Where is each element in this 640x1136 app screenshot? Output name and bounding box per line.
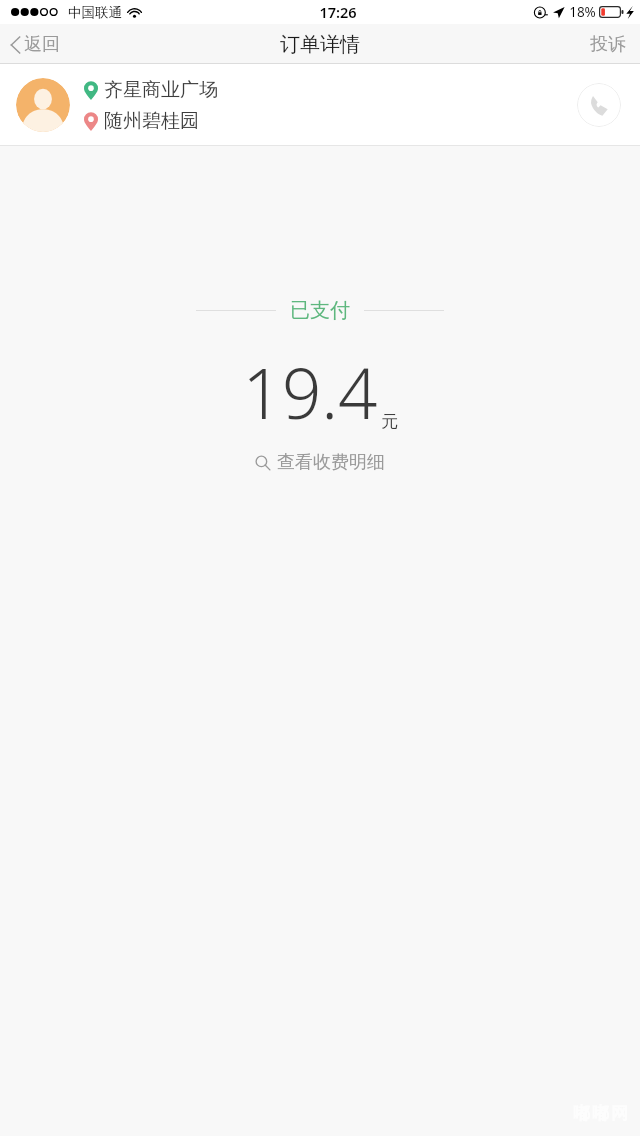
button[interactable]: 返回 xyxy=(0,27,74,62)
staticText: 订单详情 xyxy=(280,32,360,57)
staticText: 查看收费明细 xyxy=(277,451,385,474)
staticText: 18% xyxy=(569,3,596,21)
staticText: 返回 xyxy=(24,33,60,56)
button[interactable]: 查看收费明细 xyxy=(245,445,395,480)
staticText: 元 xyxy=(381,411,398,432)
staticText: 已支付 xyxy=(290,298,350,323)
staticText: 17:26 xyxy=(319,2,357,22)
staticText: 随州碧桂园 xyxy=(104,109,199,133)
staticText: 齐星商业广场 xyxy=(104,78,218,102)
button[interactable]: Call driver xyxy=(577,83,621,127)
staticText: 19.4 xyxy=(242,345,378,439)
button[interactable]: 投诉 xyxy=(576,27,640,62)
staticText: 中国联通 xyxy=(68,4,122,21)
staticText: 投诉 xyxy=(590,33,626,56)
